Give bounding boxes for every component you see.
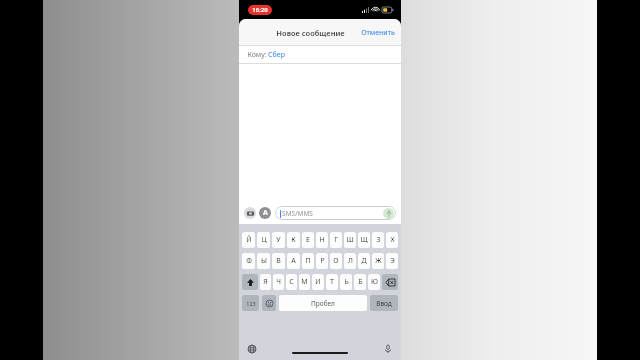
staticText: Х [390, 235, 395, 245]
staticText: Ь [344, 277, 349, 287]
button[interactable]: Ц [257, 232, 270, 248]
button[interactable]: Ж [372, 253, 384, 269]
staticText: 123 [246, 300, 256, 307]
button[interactable]: Camera [244, 207, 256, 219]
button[interactable]: З [372, 232, 384, 248]
button[interactable]: О [330, 253, 342, 269]
button[interactable]: Send [383, 208, 394, 219]
button[interactable]: Э [386, 253, 398, 269]
staticText: П [305, 256, 311, 266]
button[interactable]: Отменить [355, 23, 401, 43]
button[interactable]: Н [316, 232, 328, 248]
staticText: Г [334, 235, 338, 245]
button[interactable]: У [272, 232, 285, 248]
staticText: У [276, 235, 281, 245]
button[interactable]: Щ [358, 232, 370, 248]
staticText: Е [306, 235, 310, 245]
button[interactable]: Ю [368, 274, 380, 290]
staticText: Отменить [361, 28, 395, 38]
button[interactable]: Г [330, 232, 342, 248]
staticText: Ввод [376, 299, 392, 308]
staticText: Ж [375, 256, 382, 266]
staticText: З [376, 235, 381, 245]
button[interactable]: Д [358, 253, 370, 269]
button[interactable]: М [299, 274, 310, 290]
button[interactable]: Б [354, 274, 366, 290]
staticText: Ч [276, 277, 281, 287]
staticText: Б [358, 277, 363, 287]
button[interactable]: К [287, 232, 300, 248]
button[interactable]: SMS/MMS [275, 206, 396, 220]
staticText: О [333, 256, 339, 266]
button[interactable]: Emoji [262, 295, 276, 311]
staticText: Д [361, 256, 367, 266]
staticText: Ш [346, 235, 354, 245]
staticText: Ы [261, 256, 267, 266]
button[interactable]: Dictation [381, 342, 395, 356]
staticText: Ю [371, 277, 378, 287]
button[interactable]: И [312, 274, 324, 290]
button[interactable]: Ч [273, 274, 284, 290]
button[interactable]: Ь [340, 274, 352, 290]
button[interactable]: Р [316, 253, 328, 269]
button[interactable]: Apps [259, 207, 271, 219]
staticText: Т [330, 277, 334, 287]
staticText: Новое сообщение [276, 28, 345, 38]
button[interactable]: Shift [242, 274, 258, 290]
button[interactable]: Кому: [239, 46, 401, 64]
staticText: Ц [261, 235, 267, 245]
staticText: A [263, 208, 268, 218]
staticText: Сбер [268, 50, 285, 60]
button[interactable]: Х [386, 232, 398, 248]
button[interactable]: Л [344, 253, 356, 269]
button[interactable]: Ы [257, 253, 270, 269]
button[interactable]: Ввод [370, 295, 398, 311]
button[interactable]: С [286, 274, 297, 290]
staticText: А [291, 256, 296, 266]
staticText: Э [390, 256, 395, 266]
staticText: С [289, 277, 294, 287]
button[interactable]: Ф [242, 253, 255, 269]
staticText: Кому: [246, 50, 268, 60]
button[interactable]: Backspace [382, 274, 398, 290]
button[interactable]: Пробел [279, 295, 367, 311]
button[interactable]: А [287, 253, 300, 269]
staticText: Л [348, 256, 353, 266]
staticText: В [276, 256, 281, 266]
staticText: И [315, 277, 321, 287]
button[interactable]: П [302, 253, 314, 269]
staticText: Я [263, 277, 268, 287]
button[interactable]: Я [260, 274, 271, 290]
button[interactable]: 123 [242, 295, 259, 311]
staticText: Р [320, 256, 325, 266]
staticText: Щ [360, 235, 368, 245]
staticText: М [301, 277, 308, 287]
staticText: Н [319, 235, 325, 245]
button[interactable]: Е [302, 232, 314, 248]
staticText: К [291, 235, 296, 245]
button[interactable]: Й [242, 232, 255, 248]
staticText: SMS/MMS [282, 209, 313, 218]
button[interactable]: Ш [344, 232, 356, 248]
button[interactable]: В [272, 253, 285, 269]
button[interactable]: Change language [245, 342, 259, 356]
staticText: Пробел [311, 299, 335, 308]
staticText: Ф [246, 256, 252, 266]
staticText: Й [246, 235, 252, 245]
staticText: 16:20 [252, 6, 268, 14]
button[interactable]: Т [326, 274, 338, 290]
